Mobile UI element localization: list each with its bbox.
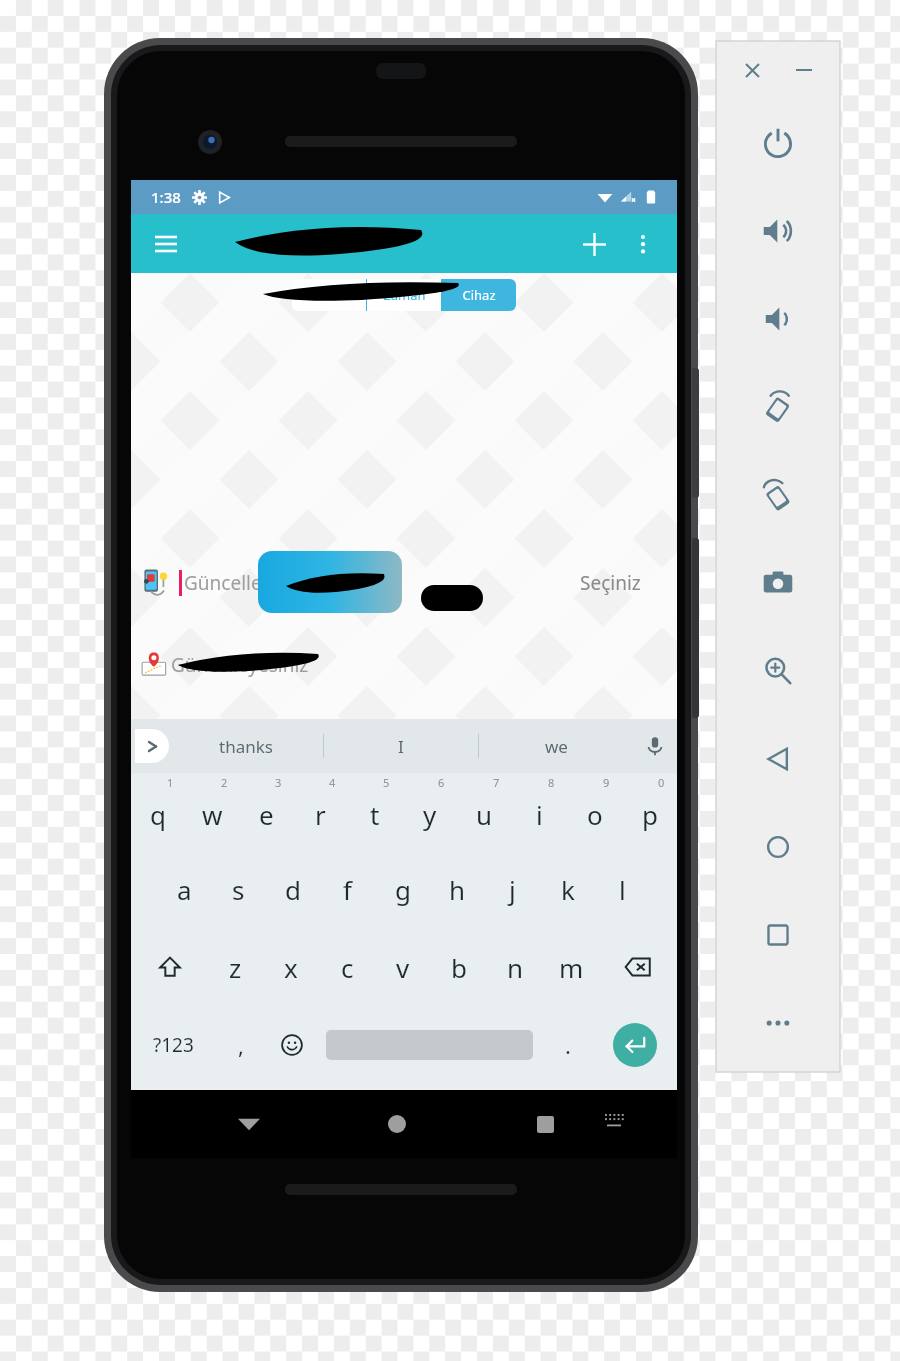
- staticText: a: [177, 872, 192, 907]
- button[interactable]: Shift: [131, 928, 208, 1006]
- button[interactable]: Home: [716, 803, 840, 891]
- staticText: c: [341, 950, 354, 985]
- button[interactable]: f: [320, 850, 375, 928]
- staticText: j: [509, 872, 516, 907]
- staticText: I: [398, 735, 404, 758]
- button[interactable]: Add: [571, 221, 617, 267]
- staticText: b: [451, 950, 467, 985]
- button[interactable]: ?123: [131, 1006, 215, 1084]
- staticText: w: [202, 797, 223, 832]
- staticText: q: [150, 797, 166, 832]
- button[interactable]: t: [347, 773, 402, 850]
- button[interactable]: Voice input: [633, 719, 677, 773]
- button[interactable]: w: [185, 773, 239, 850]
- button[interactable]: Power: [716, 99, 840, 187]
- button[interactable]: Home: [375, 1102, 419, 1146]
- button[interactable]: we: [479, 719, 633, 773]
- button[interactable]: d: [265, 850, 320, 928]
- button[interactable]: ,: [215, 1006, 266, 1084]
- button[interactable]: Select device: [258, 551, 402, 613]
- staticText: thanks: [219, 735, 273, 758]
- staticText: ?123: [153, 1032, 194, 1058]
- button[interactable]: Close: [733, 51, 771, 89]
- staticText: Seçiniz: [580, 570, 641, 596]
- button[interactable]: x: [263, 928, 319, 1006]
- button[interactable]: i: [512, 773, 567, 850]
- button[interactable]: o: [567, 773, 622, 850]
- button[interactable]: h: [430, 850, 485, 928]
- button[interactable]: c: [319, 928, 375, 1006]
- button[interactable]: Minimize: [785, 51, 823, 89]
- staticText: we: [545, 735, 568, 758]
- staticText: o: [587, 797, 603, 832]
- button[interactable]: Rotate right: [716, 451, 840, 539]
- button[interactable]: Rotate left: [716, 363, 840, 451]
- staticText: Cihazlar: [304, 286, 354, 304]
- staticText: f: [343, 872, 352, 907]
- staticText: Güncelleyesiniz: [171, 652, 319, 678]
- button[interactable]: s: [211, 850, 265, 928]
- staticText: Zaman: [383, 286, 426, 304]
- button[interactable]: Volume down: [716, 275, 840, 363]
- button[interactable]: v: [375, 928, 431, 1006]
- staticText: m: [559, 950, 584, 985]
- button[interactable]: Overview: [716, 891, 840, 979]
- staticText: 2: [221, 775, 228, 790]
- staticText: Güncelley: [184, 570, 271, 596]
- button[interactable]: Zaman: [367, 279, 441, 311]
- button[interactable]: More suggestions: [135, 729, 169, 763]
- staticText: 9: [603, 775, 610, 790]
- staticText: 1:38: [151, 187, 181, 207]
- button[interactable]: .: [542, 1006, 593, 1084]
- staticText: t: [370, 797, 380, 832]
- button[interactable]: More: [716, 979, 840, 1067]
- button[interactable]: Screenshot: [716, 539, 840, 627]
- button[interactable]: y: [402, 773, 457, 850]
- button[interactable]: [317, 1006, 542, 1084]
- button[interactable]: Backspace: [599, 928, 677, 1006]
- button[interactable]: g: [375, 850, 430, 928]
- button[interactable]: j: [485, 850, 540, 928]
- button[interactable]: m: [543, 928, 599, 1006]
- button[interactable]: Recent apps: [523, 1102, 567, 1146]
- button[interactable]: n: [487, 928, 543, 1006]
- button[interactable]: l: [595, 850, 650, 928]
- button[interactable]: Switch keyboard: [593, 1102, 637, 1146]
- staticText: p: [642, 797, 658, 832]
- button[interactable]: More options: [621, 222, 665, 266]
- staticText: i: [536, 797, 543, 832]
- button[interactable]: Open navigation drawer: [143, 221, 189, 267]
- button[interactable]: Zoom: [716, 627, 840, 715]
- staticText: k: [561, 872, 575, 907]
- button[interactable]: q: [131, 773, 185, 850]
- button[interactable]: Volume up: [716, 187, 840, 275]
- button[interactable]: b: [431, 928, 487, 1006]
- button[interactable]: I: [324, 719, 478, 773]
- button[interactable]: r: [293, 773, 347, 850]
- staticText: s: [232, 872, 245, 907]
- button[interactable]: k: [540, 850, 595, 928]
- staticText: g: [395, 872, 411, 907]
- staticText: u: [476, 797, 493, 832]
- staticText: r: [315, 797, 326, 832]
- staticText: 4: [329, 775, 336, 790]
- button[interactable]: e: [239, 773, 293, 850]
- button[interactable]: Cihazlar: [292, 279, 366, 311]
- button[interactable]: Enter: [593, 1006, 677, 1084]
- staticText: h: [449, 872, 466, 907]
- button[interactable]: Back: [227, 1102, 271, 1146]
- button[interactable]: Emoji: [266, 1006, 317, 1084]
- staticText: x: [284, 950, 298, 985]
- button[interactable]: u: [457, 773, 512, 850]
- button[interactable]: Cihaz: [442, 279, 516, 311]
- staticText: Cihaz: [462, 286, 496, 304]
- staticText: 5: [383, 775, 390, 790]
- button[interactable]: thanks: [169, 719, 323, 773]
- staticText: n: [507, 950, 524, 985]
- button[interactable]: z: [208, 928, 263, 1006]
- button[interactable]: p: [622, 773, 677, 850]
- staticText: e: [259, 797, 274, 832]
- button[interactable]: a: [157, 850, 211, 928]
- button[interactable]: Back: [716, 715, 840, 803]
- staticText: 8: [548, 775, 555, 790]
